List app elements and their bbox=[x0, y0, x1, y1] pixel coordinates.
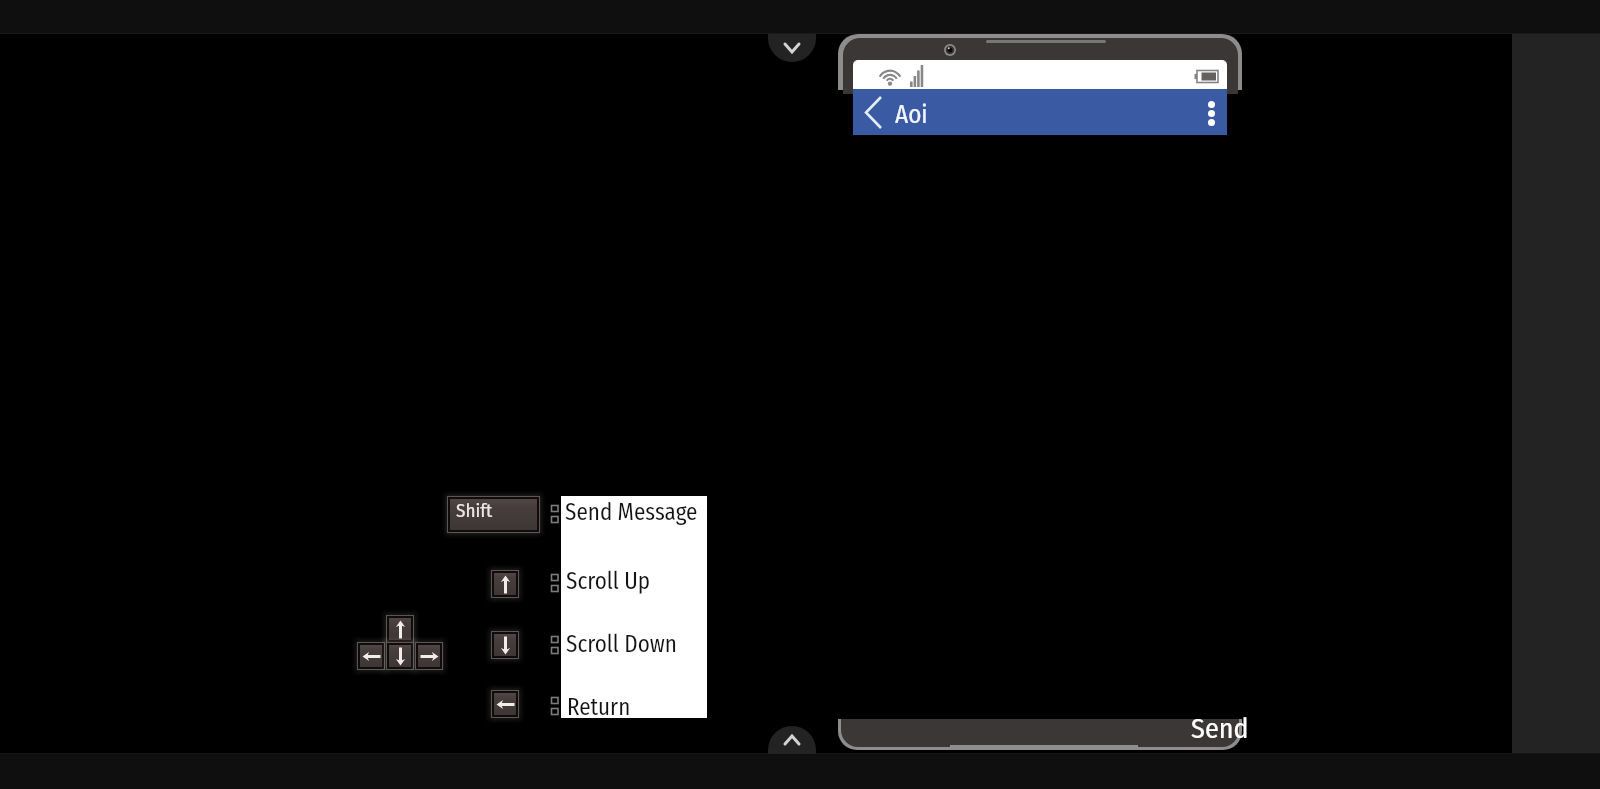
button[interactable]: Down arrow key bbox=[494, 634, 516, 656]
button[interactable]: Back bbox=[853, 89, 1227, 135]
staticText: Send Message bbox=[565, 498, 698, 526]
button[interactable]: Down arrow key bbox=[389, 645, 411, 667]
button[interactable]: Scroll down bbox=[768, 34, 816, 62]
staticText: Scroll Down bbox=[566, 630, 677, 658]
staticText: Send bbox=[1191, 712, 1249, 746]
staticText: Shift bbox=[456, 499, 493, 521]
button[interactable]: Shift bbox=[450, 499, 537, 530]
button[interactable]: Right arrow key bbox=[418, 645, 440, 667]
button[interactable]: Scroll up bbox=[768, 726, 816, 754]
button[interactable]: More options bbox=[1197, 89, 1227, 135]
staticText: Scroll Up bbox=[566, 567, 651, 595]
staticText: Return bbox=[567, 693, 631, 721]
button[interactable]: Left arrow key bbox=[360, 645, 382, 667]
button[interactable]: Left arrow key bbox=[494, 693, 516, 715]
button[interactable]: Back bbox=[853, 89, 894, 135]
staticText: Aoi bbox=[895, 100, 928, 130]
button[interactable]: Send bbox=[1191, 707, 1263, 751]
button[interactable]: Up arrow key bbox=[389, 618, 411, 640]
button[interactable]: Up arrow key bbox=[494, 573, 516, 595]
